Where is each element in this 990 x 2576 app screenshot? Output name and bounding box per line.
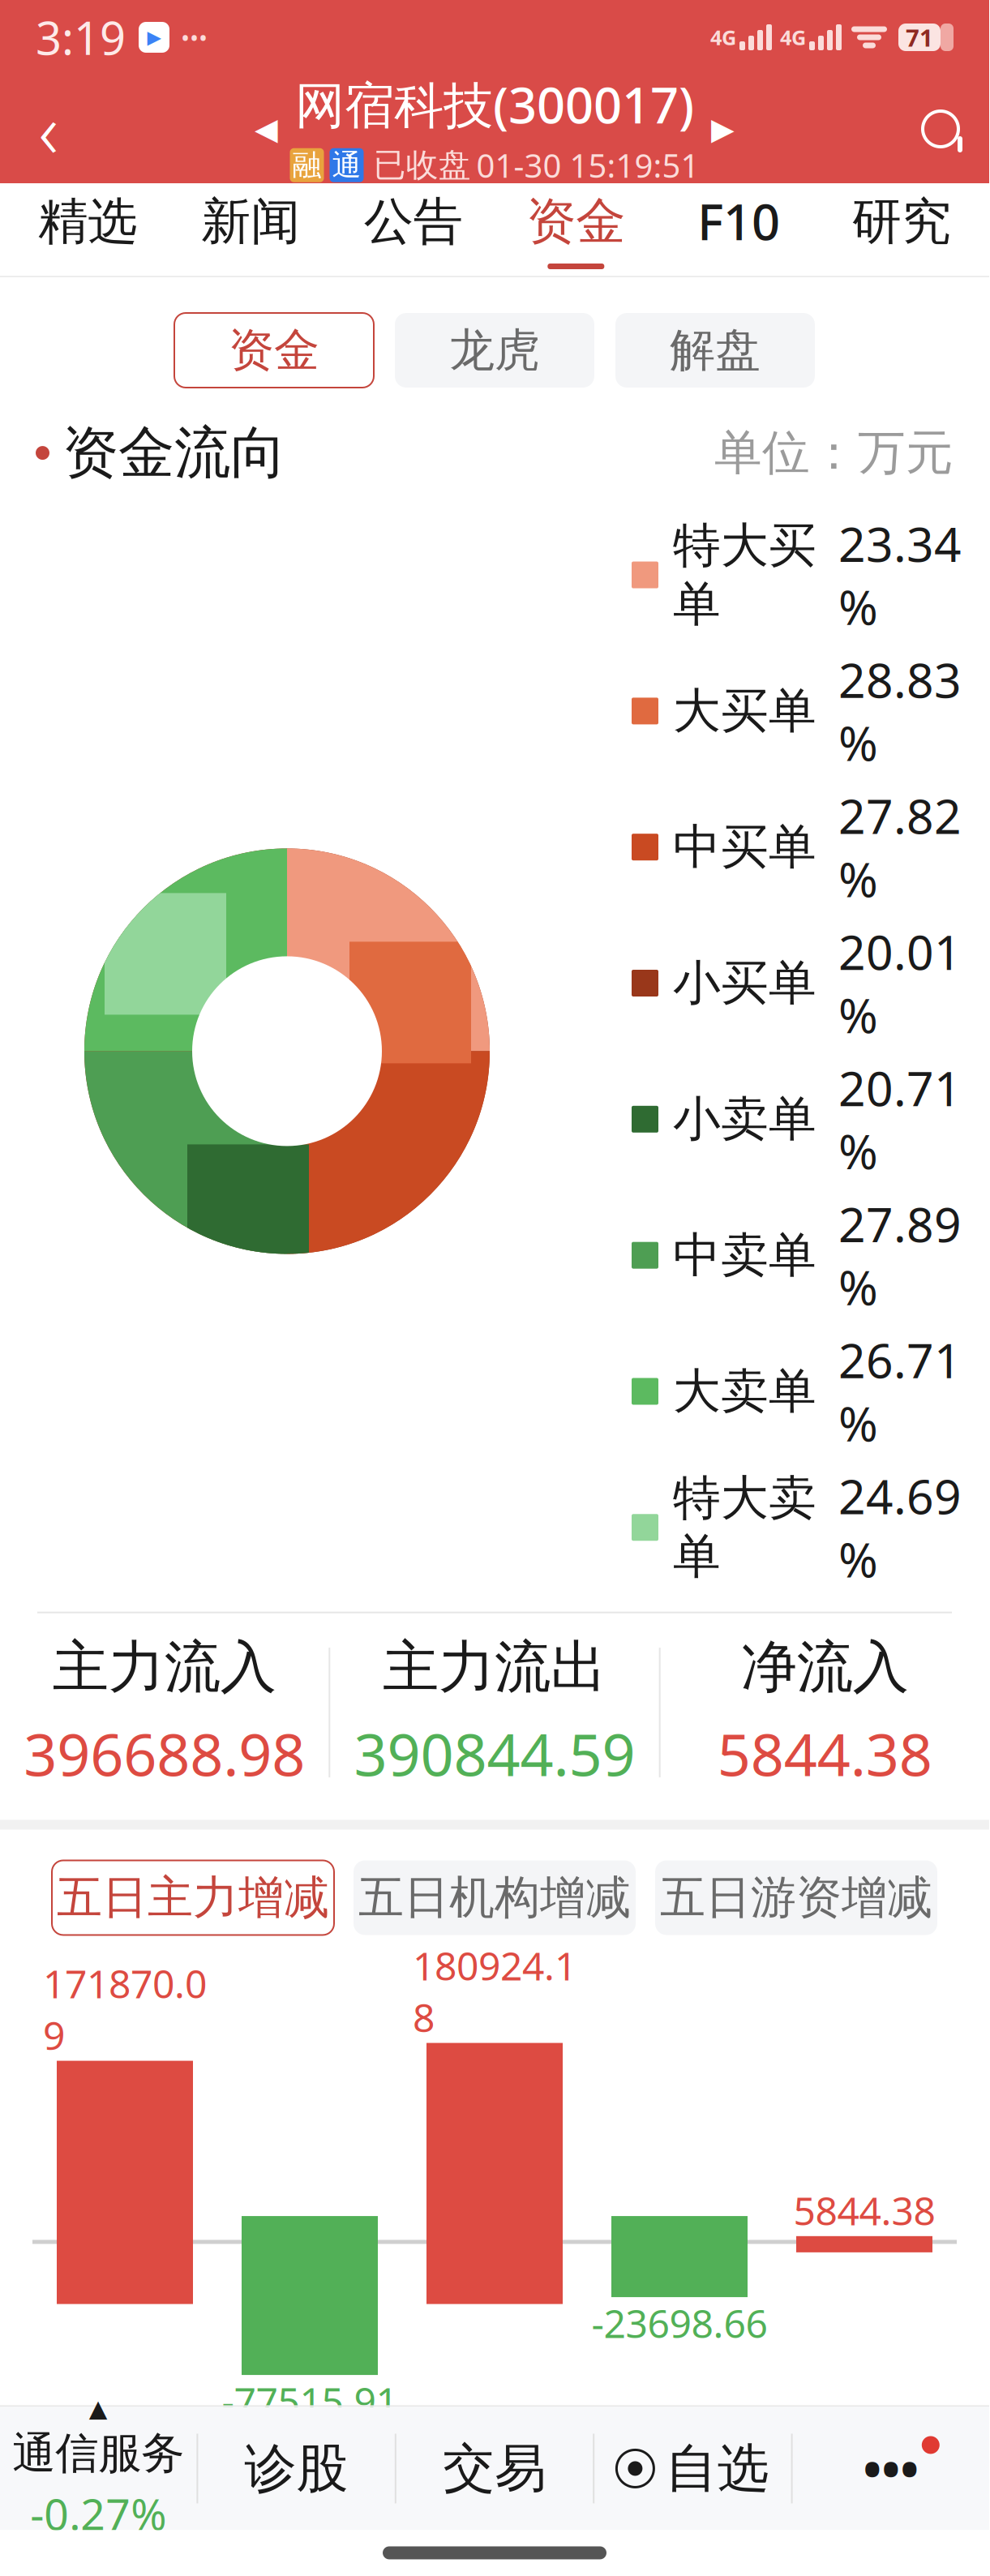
staticText: •••	[863, 2435, 919, 2501]
staticText: 23.34%	[838, 512, 962, 638]
staticText: •••	[181, 21, 208, 53]
staticText: 20.71%	[838, 1056, 962, 1182]
staticText: 融	[292, 147, 321, 183]
staticText: 5844.38	[717, 1715, 932, 1792]
staticText: -0.27%	[30, 2485, 166, 2542]
staticText: 171870.09	[43, 1957, 207, 2061]
staticText: 20.01%	[838, 920, 962, 1046]
staticText: 大卖单	[673, 1362, 816, 1421]
button[interactable]: 诊股	[198, 2407, 395, 2530]
staticText: F10	[697, 188, 780, 254]
staticText: 精选	[38, 191, 137, 252]
staticText: 主力流入	[52, 1633, 276, 1702]
staticText: 特大卖单	[673, 1469, 816, 1586]
staticText: 大买单	[673, 682, 816, 740]
staticText: 180924.18	[413, 1940, 576, 2043]
button[interactable]: Search	[892, 80, 989, 178]
staticText: 主力流出	[383, 1633, 606, 1702]
staticText: 中买单	[673, 818, 816, 876]
staticText: 01-30 15:19:51	[476, 144, 699, 187]
staticText: 小卖单	[673, 1090, 816, 1148]
button[interactable]: 五日游资增减	[655, 1860, 937, 1935]
staticText: 公告	[364, 191, 463, 252]
staticText: 诊股	[245, 2437, 348, 2500]
staticText: 396688.98	[24, 1715, 305, 1792]
button[interactable]: 龙虎	[395, 313, 594, 388]
button[interactable]: 资金	[174, 313, 374, 388]
staticText: 单位：万元	[714, 424, 954, 482]
button[interactable]: 研究	[820, 183, 983, 276]
staticText: 4G	[710, 24, 736, 51]
staticText: -77515.91	[222, 2375, 398, 2427]
button[interactable]: 公告	[332, 183, 495, 276]
staticText: 3:19	[36, 7, 126, 67]
staticText: 资金	[229, 322, 319, 378]
button[interactable]: 新闻	[169, 183, 332, 276]
button[interactable]: Back	[0, 80, 97, 178]
staticText: 五日游资增减	[660, 1870, 932, 1926]
button[interactable]: 解盘	[615, 313, 815, 388]
staticText: 71	[906, 21, 933, 53]
staticText: 自选	[665, 2437, 769, 2500]
staticText: 研究	[852, 191, 951, 252]
staticText: 5844.38	[793, 2184, 935, 2236]
staticText: 28.83%	[838, 648, 962, 774]
staticText: -23698.66	[591, 2297, 767, 2349]
staticText: 4G	[780, 24, 806, 51]
staticText: 27.89%	[838, 1192, 962, 1318]
button[interactable]: 五日机构增减	[354, 1860, 636, 1935]
staticText: 资金流向	[62, 418, 286, 487]
staticText: 特大买单	[673, 516, 816, 633]
staticText: 26.71%	[838, 1328, 962, 1454]
staticText: 五日机构增减	[358, 1870, 631, 1926]
staticText: ▲	[89, 2395, 108, 2422]
button[interactable]: 资金	[495, 183, 657, 276]
staticText: 通	[332, 147, 361, 183]
button[interactable]: F10	[657, 183, 820, 276]
button[interactable]: 五日主力增减	[52, 1860, 334, 1935]
staticText: 24.69%	[838, 1464, 962, 1591]
staticText: 390844.59	[354, 1715, 635, 1792]
button[interactable]: Previous stock	[243, 84, 290, 174]
staticText: 小买单	[673, 954, 816, 1012]
button[interactable]: •••	[793, 2407, 989, 2530]
staticText: 中卖单	[673, 1226, 816, 1285]
staticText: 新闻	[201, 191, 300, 252]
staticText: 通信服务	[12, 2427, 184, 2480]
staticText: ‹	[39, 79, 59, 179]
button[interactable]: 精选	[6, 183, 169, 276]
staticText: 解盘	[670, 322, 761, 378]
button[interactable]: Next stock	[699, 84, 746, 174]
staticText: 交易	[443, 2437, 546, 2500]
staticText: 27.82%	[838, 784, 962, 910]
staticText: ◀	[255, 112, 278, 146]
staticText: 五日主力增减	[57, 1870, 329, 1926]
staticText: 资金	[526, 191, 625, 252]
button[interactable]: 交易	[396, 2407, 593, 2530]
button[interactable]: ▲	[0, 2407, 197, 2530]
staticText: ▶	[711, 112, 735, 146]
staticText: 已收盘	[373, 145, 471, 185]
staticText: ▶	[147, 27, 161, 48]
staticText: 净流入	[741, 1633, 909, 1702]
staticText: 龙虎	[449, 322, 540, 378]
staticText: 网宿科技(300017)	[295, 71, 694, 137]
button[interactable]: 自选	[594, 2407, 791, 2530]
